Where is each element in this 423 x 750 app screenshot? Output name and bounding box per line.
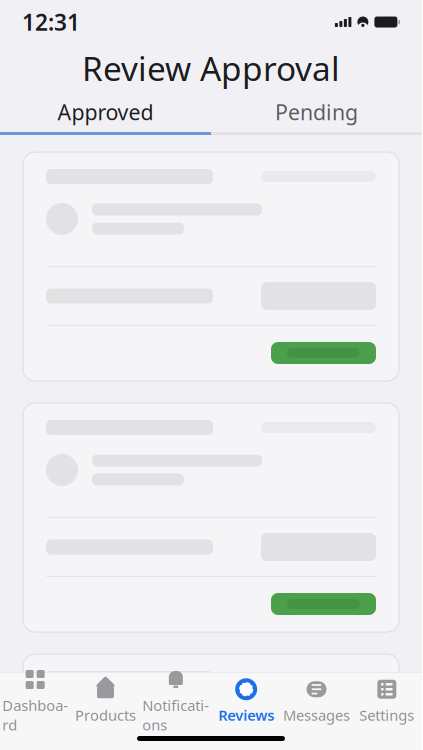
staticText: Settings — [359, 705, 414, 725]
staticText: Dashboard — [2, 695, 68, 734]
staticText: Messages — [283, 705, 350, 725]
button[interactable]: Dashboard — [0, 676, 70, 726]
button[interactable]: Approve — [271, 593, 376, 615]
button[interactable]: Messages — [281, 676, 352, 726]
button[interactable]: Pending — [211, 92, 422, 132]
button[interactable]: Approved — [0, 92, 211, 132]
staticText: Reviews — [218, 705, 274, 725]
staticText: 12:31 — [22, 7, 80, 37]
button[interactable]: Notifications — [141, 676, 211, 726]
staticText: Pending — [275, 98, 358, 126]
staticText: Review Approval — [82, 46, 340, 90]
button[interactable]: Settings — [352, 676, 422, 726]
button[interactable]: Reviews — [211, 676, 281, 726]
staticText: Notifications — [142, 695, 209, 734]
button[interactable]: Approve — [271, 342, 376, 364]
button[interactable]: Products — [70, 676, 141, 726]
staticText: Approved — [57, 98, 153, 126]
staticText: Products — [75, 705, 136, 725]
